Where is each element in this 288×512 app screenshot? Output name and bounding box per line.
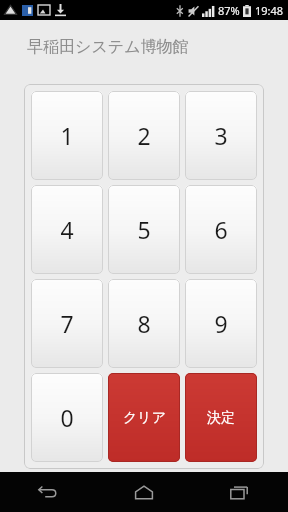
staticText: 決定 — [207, 409, 235, 427]
button[interactable]: 8 — [108, 279, 180, 368]
staticText: 9 — [214, 308, 228, 339]
button[interactable]: 9 — [185, 279, 257, 368]
button[interactable]: Home — [96, 472, 192, 512]
button[interactable]: 2 — [108, 91, 180, 180]
button[interactable]: 5 — [108, 185, 180, 274]
button[interactable]: 1 — [31, 91, 103, 180]
staticText: 7 — [60, 308, 74, 339]
button[interactable]: クリア — [108, 373, 180, 462]
staticText: 1 — [60, 120, 74, 151]
staticText: 2 — [137, 120, 151, 151]
button[interactable]: 7 — [31, 279, 103, 368]
staticText: クリア — [123, 409, 166, 427]
staticText: 0 — [60, 402, 74, 433]
button[interactable]: 3 — [185, 91, 257, 180]
staticText: 19:48 — [255, 3, 284, 18]
button[interactable]: 決定 — [185, 373, 257, 462]
button[interactable]: 0 — [31, 373, 103, 462]
button[interactable]: 4 — [31, 185, 103, 274]
staticText: 8 — [137, 308, 151, 339]
button[interactable]: Recent apps — [192, 472, 288, 512]
staticText: 4 — [60, 214, 74, 245]
staticText: 5 — [137, 214, 151, 245]
button[interactable]: Back — [0, 472, 96, 512]
staticText: 6 — [214, 214, 228, 245]
staticText: 87% — [218, 3, 240, 18]
button[interactable]: 6 — [185, 185, 257, 274]
staticText: 早稲田システム博物館 — [27, 37, 189, 57]
staticText: 3 — [214, 120, 228, 151]
